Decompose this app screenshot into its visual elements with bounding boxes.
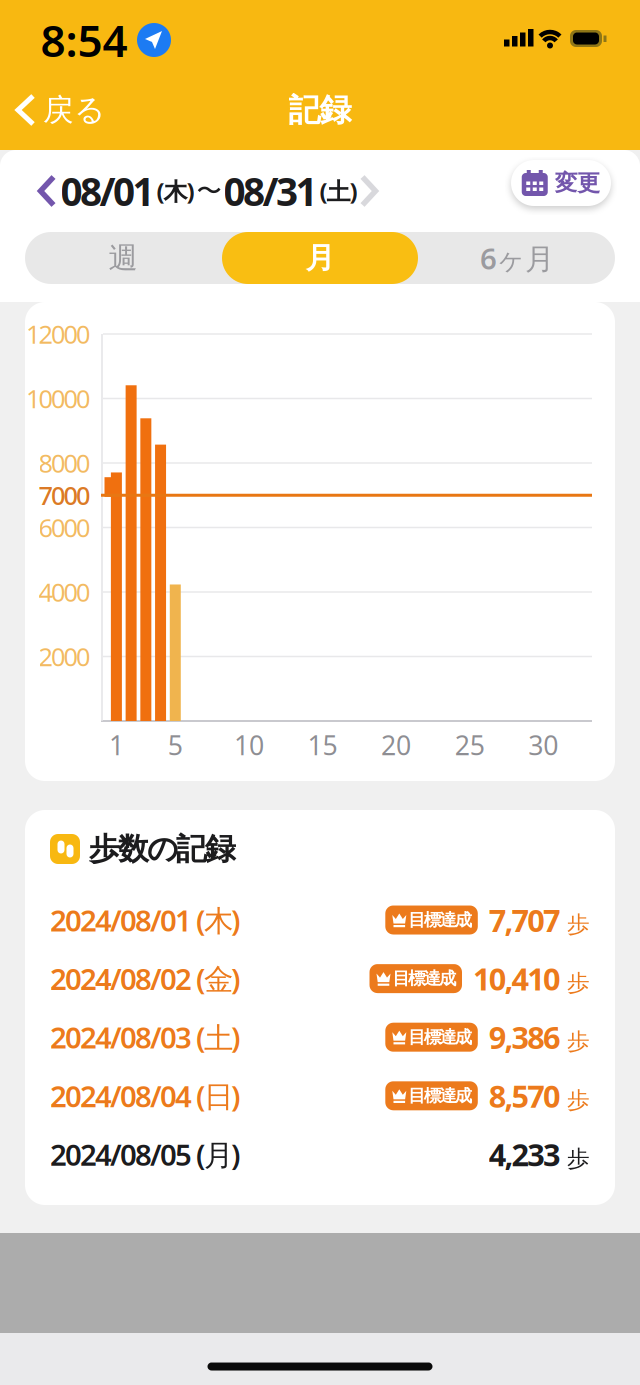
staticText: 8:54: [40, 11, 127, 69]
staticText: 15: [307, 727, 337, 763]
staticText: (土): [319, 175, 357, 207]
staticText: 歩: [567, 1145, 590, 1173]
staticText: 6000: [38, 511, 90, 544]
button[interactable]: 月: [222, 232, 418, 284]
staticText: 歩数の記録: [89, 830, 236, 868]
staticText: 10: [234, 727, 264, 763]
staticText: 変更: [555, 169, 600, 197]
button[interactable]: 戻る: [15, 88, 105, 132]
staticText: 8000: [38, 446, 90, 480]
staticText: 10000: [26, 382, 90, 415]
staticText: 2024/08/02 (金): [50, 959, 241, 998]
button[interactable]: 前の期間: [37, 174, 56, 208]
staticText: 7,707: [489, 900, 561, 940]
staticText: 8,570: [489, 1075, 561, 1116]
staticText: 9,386: [489, 1017, 561, 1057]
staticText: 4000: [38, 575, 90, 609]
button[interactable]: 次の期間: [359, 174, 378, 208]
staticText: 〜: [196, 175, 221, 206]
staticText: 10,410: [473, 958, 561, 999]
staticText: 歩: [567, 910, 590, 938]
staticText: 目標達成: [408, 1085, 472, 1106]
staticText: 目標達成: [408, 909, 472, 931]
staticText: 20: [381, 727, 411, 763]
staticText: 2024/08/01 (木): [50, 900, 241, 939]
staticText: 7000: [38, 478, 90, 512]
staticText: 戻る: [43, 91, 105, 129]
staticText: 2024/08/05 (月): [50, 1135, 241, 1174]
staticText: 08/01: [60, 165, 154, 217]
staticText: 30: [528, 727, 558, 763]
staticText: 週: [108, 240, 137, 276]
staticText: 6ヶ月: [480, 238, 554, 277]
staticText: 25: [455, 727, 485, 763]
staticText: (木): [156, 175, 194, 207]
staticText: 2000: [38, 640, 90, 673]
staticText: 歩: [567, 1086, 590, 1114]
staticText: 2024/08/04 (日): [50, 1076, 241, 1115]
staticText: 目標達成: [408, 1027, 472, 1048]
staticText: 歩: [567, 969, 590, 997]
staticText: 08/31: [223, 165, 317, 217]
staticText: 月: [305, 240, 334, 276]
staticText: 2024/08/03 (土): [50, 1018, 241, 1057]
staticText: 4,233: [489, 1134, 561, 1175]
button[interactable]: 6ヶ月: [419, 232, 615, 284]
staticText: 歩: [567, 1028, 590, 1055]
staticText: 1: [109, 727, 124, 763]
staticText: 記録: [288, 90, 351, 130]
staticText: 目標達成: [392, 968, 456, 989]
staticText: 5: [168, 727, 183, 763]
button[interactable]: 変更: [511, 160, 611, 206]
staticText: 12000: [26, 317, 90, 351]
button[interactable]: 週: [25, 232, 221, 284]
